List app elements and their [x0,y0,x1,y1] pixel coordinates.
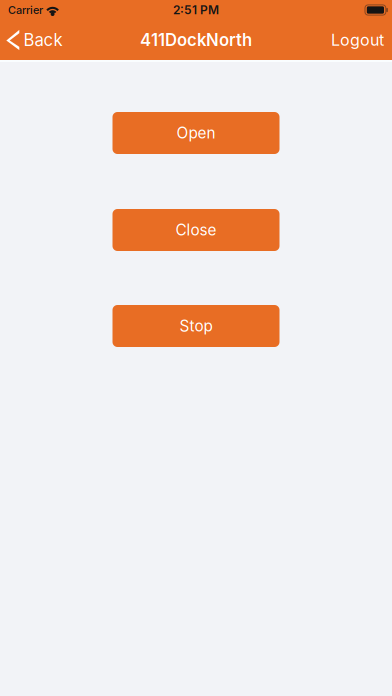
staticText: Close [175,221,216,239]
staticText: Stop [179,317,212,335]
staticText: 411DockNorth [140,30,252,50]
button[interactable]: Open [112,112,279,154]
button[interactable]: Back [0,20,71,60]
staticText: Open [176,124,215,142]
staticText: 2:51 PM [173,3,219,17]
staticText: Carrier [8,3,43,17]
staticText: Logout [331,30,384,50]
button[interactable]: Stop [112,305,279,347]
staticText: Back [24,30,63,50]
button[interactable]: Close [112,209,279,251]
button[interactable]: Logout [321,20,392,60]
